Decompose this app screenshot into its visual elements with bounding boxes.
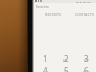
staticText: GHI [43, 71, 48, 72]
button[interactable]: 4 [35, 65, 56, 72]
staticText: RECENTS [45, 12, 62, 17]
staticText: 3 [84, 53, 89, 64]
staticText: 1 [43, 53, 48, 64]
button[interactable]: 3 [76, 53, 96, 64]
staticText: 6 [84, 65, 89, 72]
button[interactable]: 1 [35, 53, 56, 64]
staticText: CONTACTS [75, 12, 95, 17]
staticText: ABC [63, 59, 69, 63]
button[interactable]: CONTACTS [69, 11, 96, 17]
staticText: JKL [64, 71, 68, 72]
staticText: Favorites [36, 5, 49, 9]
button[interactable]: RECENTS [38, 11, 69, 17]
button[interactable]: 5 [56, 65, 76, 72]
staticText: 2 [64, 53, 69, 64]
button[interactable]: 2 [56, 53, 76, 64]
button[interactable]: 6 [76, 65, 96, 72]
staticText: DEF [84, 59, 89, 63]
staticText: MNO [83, 71, 90, 72]
staticText: 5 [64, 65, 69, 72]
staticText: 4 [43, 65, 48, 72]
